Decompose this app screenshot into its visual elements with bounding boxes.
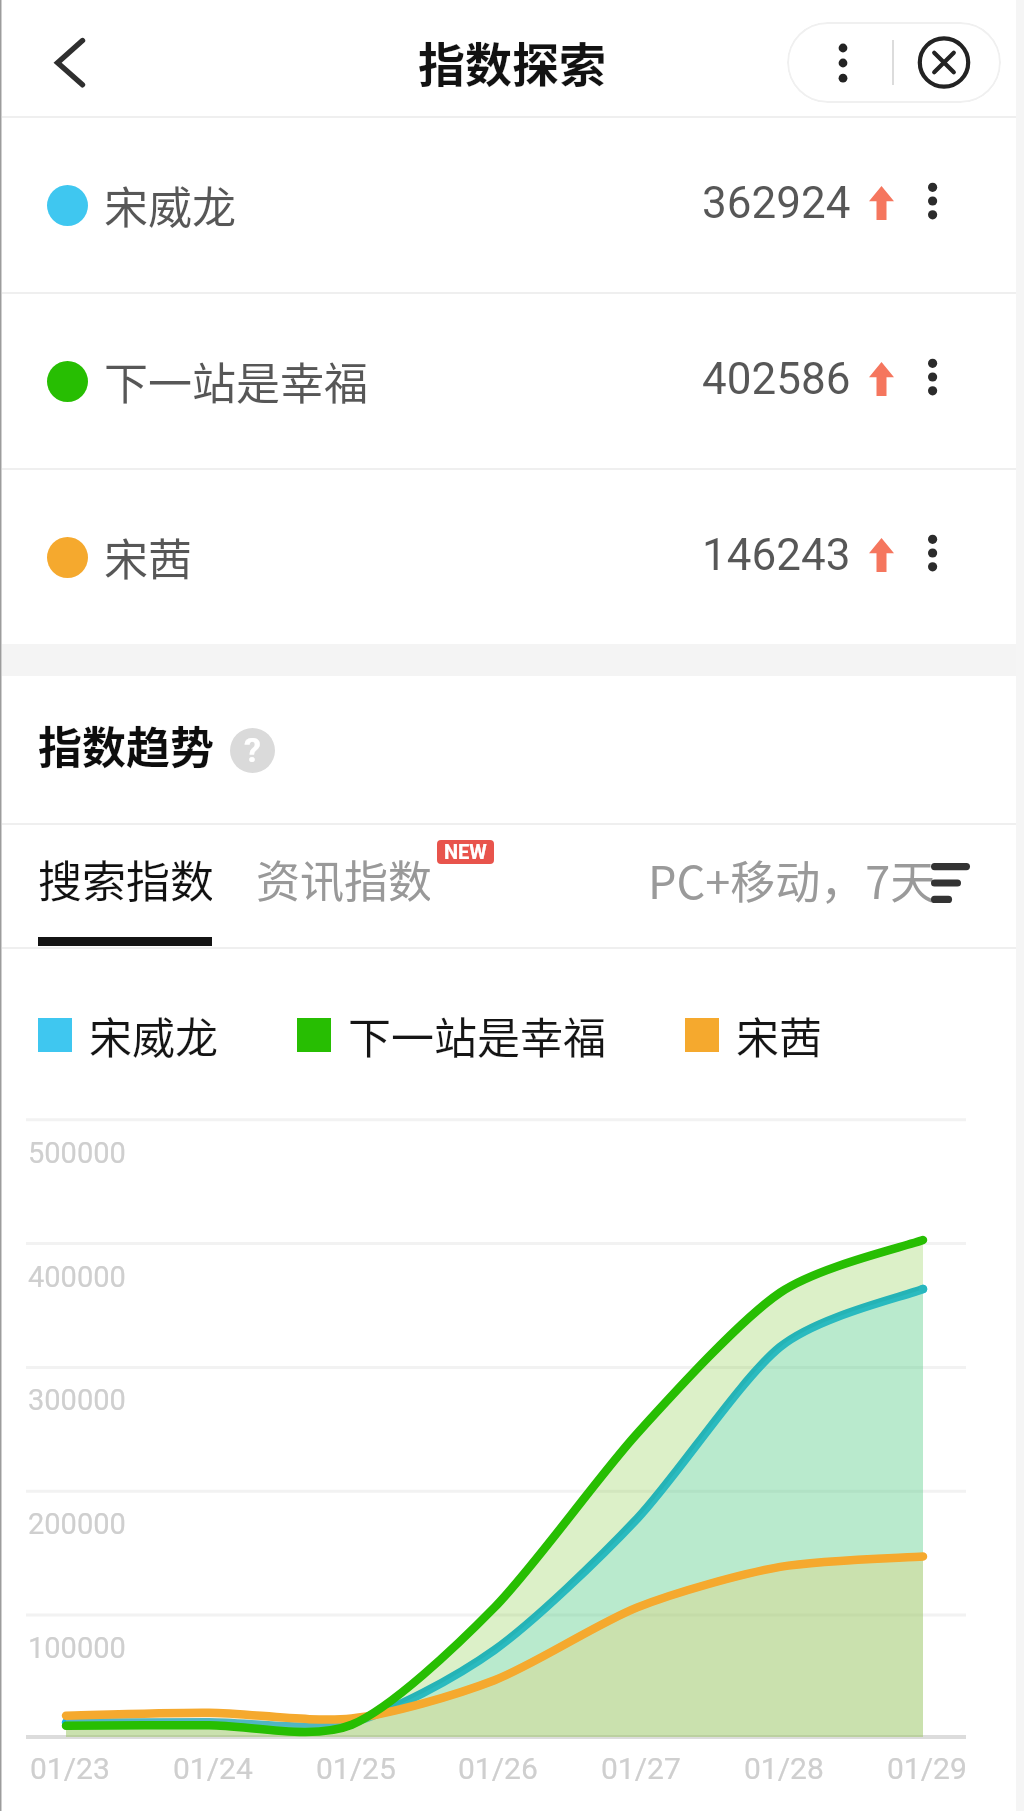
staticText: 搜索指数 [38, 847, 212, 909]
staticText: 指数趋势 [38, 713, 214, 777]
staticText: 01/27 [601, 1751, 681, 1786]
staticText: 宋威龙 [89, 1004, 218, 1066]
button[interactable]: 宋茜 [0, 470, 1024, 644]
button[interactable]: Help [230, 728, 275, 773]
button[interactable]: 搜索指数 [38, 847, 212, 909]
staticText: 下一站是幸福 [348, 1004, 606, 1066]
staticText: 01/28 [744, 1751, 824, 1786]
staticText: 402586 [702, 353, 851, 405]
staticText: 500000 [28, 1136, 126, 1170]
button[interactable]: Row menu [905, 155, 965, 255]
button[interactable]: Row menu [905, 331, 965, 431]
button[interactable]: Close [892, 22, 1001, 103]
staticText: ? [244, 730, 261, 770]
button[interactable]: Back [20, 18, 100, 98]
button[interactable]: Row menu [905, 507, 965, 607]
staticText: 01/29 [887, 1751, 967, 1786]
button[interactable]: 宋威龙 [0, 118, 1024, 292]
staticText: 下一站是幸福 [104, 349, 368, 413]
staticText: PC+移动，7天 [648, 847, 936, 909]
staticText: 146243 [702, 529, 851, 581]
button[interactable]: 下一站是幸福 [0, 294, 1024, 468]
staticText: 宋威龙 [104, 173, 236, 237]
staticText: 宋茜 [104, 525, 192, 589]
staticText: 01/26 [458, 1751, 538, 1786]
staticText: 100000 [28, 1631, 126, 1665]
staticText: 01/23 [30, 1751, 110, 1786]
staticText: 300000 [28, 1383, 126, 1417]
button[interactable]: 资讯指数 [256, 847, 430, 909]
staticText: 01/25 [316, 1751, 396, 1786]
staticText: 宋茜 [736, 1004, 822, 1066]
button[interactable]: PC+移动，7天 [648, 847, 936, 909]
button[interactable]: More options [787, 22, 892, 103]
staticText: 400000 [28, 1260, 126, 1294]
staticText: 指数探索 [418, 27, 606, 95]
staticText: 01/24 [173, 1751, 253, 1786]
staticText: 资讯指数 [256, 847, 430, 909]
staticText: 200000 [28, 1507, 126, 1541]
staticText: NEW [444, 840, 487, 863]
staticText: 362924 [702, 177, 851, 229]
